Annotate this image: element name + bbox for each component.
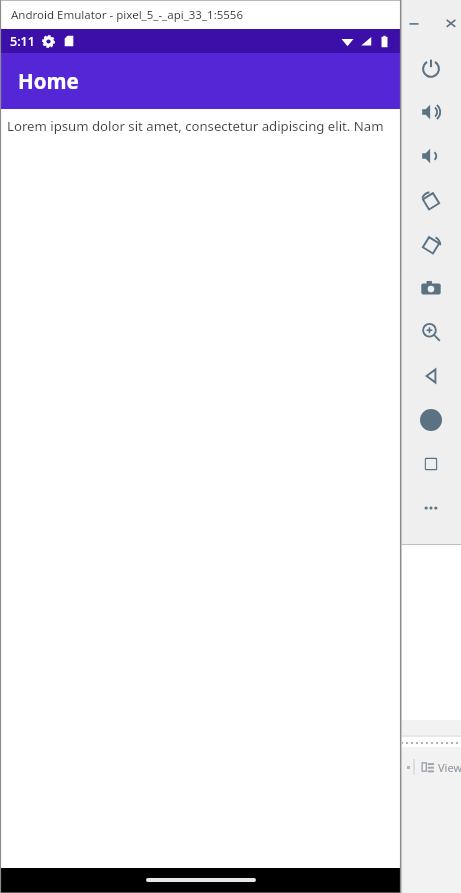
button[interactable]: Close [441, 10, 461, 36]
button[interactable]: Volume down [401, 134, 461, 178]
staticText: 5:11 [10, 33, 35, 50]
button[interactable]: More [401, 486, 461, 530]
staticText: Android Emulator - pixel_5_-_api_33_1:55… [11, 7, 244, 23]
button[interactable]: Back [401, 354, 461, 398]
button[interactable]: Rotate left [401, 178, 461, 222]
button[interactable]: Take screenshot [401, 266, 461, 310]
button[interactable]: Zoom [401, 310, 461, 354]
button[interactable]: Home [0, 53, 401, 109]
staticText: View [438, 760, 461, 775]
button[interactable]: Overview [401, 442, 461, 486]
button[interactable]: Power [401, 46, 461, 90]
button[interactable]: Rotate right [401, 222, 461, 266]
staticText: Lorem ipsum dolor sit amet, consectetur … [7, 117, 384, 135]
button[interactable]: Home [401, 398, 461, 442]
staticText: Home [18, 67, 79, 95]
button[interactable]: Home gesture [146, 878, 256, 882]
button[interactable]: Volume up [401, 90, 461, 134]
button[interactable]: Minimize [401, 10, 427, 36]
